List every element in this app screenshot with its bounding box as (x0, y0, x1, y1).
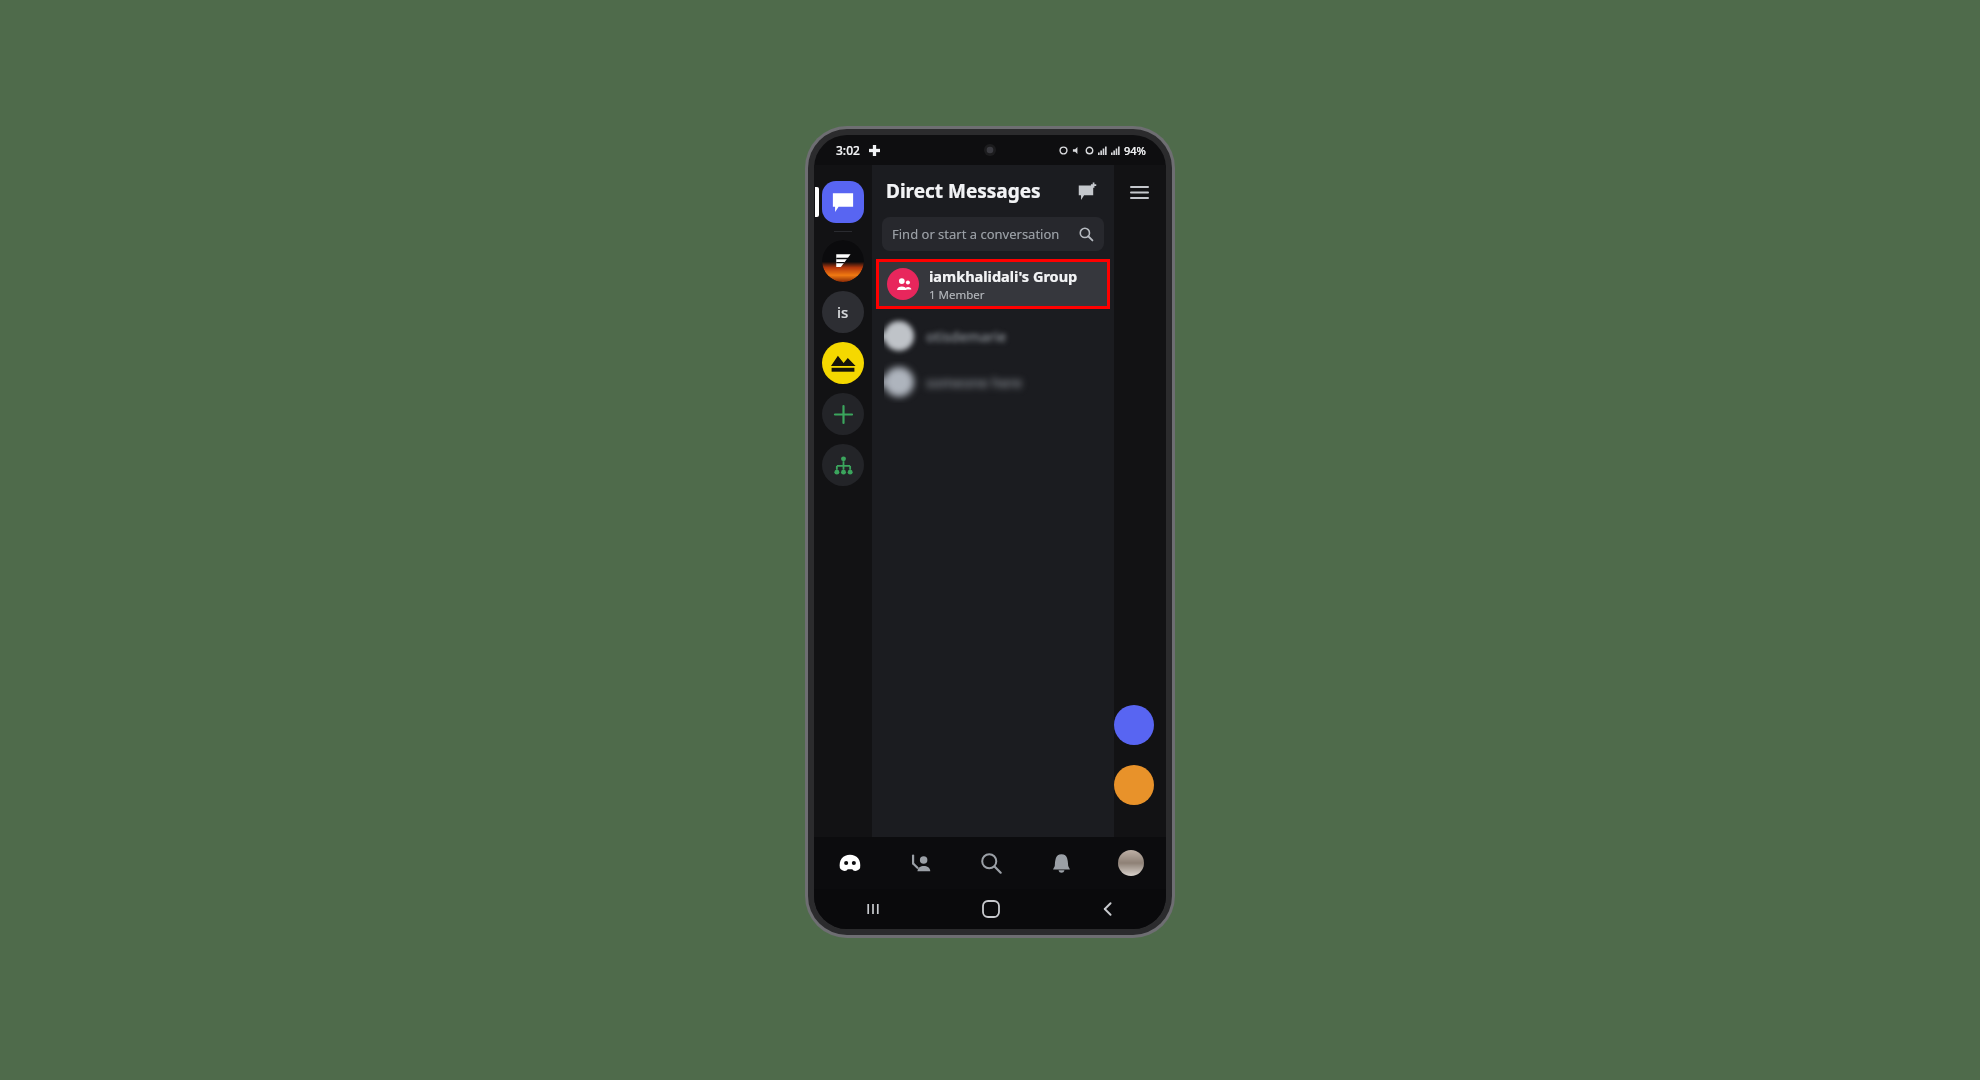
staticText: someone here (926, 373, 1023, 392)
button[interactable]: Recents (814, 889, 932, 929)
staticText: is (837, 302, 849, 322)
staticText: Direct Messages (886, 178, 1070, 204)
staticText: 94% (1124, 143, 1146, 158)
button[interactable]: Explore Public Servers (822, 444, 864, 486)
button[interactable]: iamkhalidali's Group (879, 262, 1107, 306)
button[interactable]: Direct Messages (822, 181, 864, 223)
button[interactable]: Add a Server (822, 393, 864, 435)
button[interactable]: Home (814, 837, 885, 889)
button[interactable]: Server (822, 342, 864, 384)
staticText: 3:02 (836, 142, 860, 158)
button[interactable]: Back (1049, 889, 1166, 929)
button[interactable]: Notifications (1026, 837, 1096, 889)
button[interactable]: Server (822, 240, 864, 282)
staticText: 1 Member (929, 287, 985, 303)
button[interactable]: otisdemarie (884, 315, 1114, 357)
button[interactable]: Server is (822, 291, 864, 333)
staticText: iamkhalidali's Group (929, 266, 1078, 286)
button[interactable]: Home (932, 889, 1049, 929)
button[interactable]: Menu (1124, 177, 1154, 207)
button[interactable]: New Direct Message (1070, 174, 1104, 208)
staticText: otisdemarie (926, 327, 1007, 346)
staticText: Find or start a conversation (892, 225, 1060, 243)
button[interactable]: Profile (1096, 837, 1166, 889)
button[interactable]: someone here (884, 361, 1114, 403)
button[interactable]: Find or start a conversation (882, 217, 1104, 251)
button[interactable]: Friends (885, 837, 956, 889)
button[interactable]: Search (956, 837, 1026, 889)
